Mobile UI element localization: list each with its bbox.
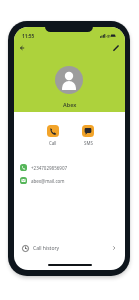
staticText: Call <box>49 140 57 146</box>
staticText: Abex <box>63 101 77 108</box>
staticText: Call history <box>33 245 60 252</box>
staticText: 11:55 <box>22 33 35 40</box>
button[interactable]: Call history <box>14 241 125 255</box>
staticText: abex@mail.com <box>31 178 65 184</box>
staticText: SMS <box>84 140 93 146</box>
button[interactable]: +2347029856907 <box>20 164 118 171</box>
staticText: +2347029856907 <box>31 165 68 171</box>
button[interactable]: Call <box>47 125 59 146</box>
button[interactable]: Back <box>16 42 27 53</box>
button[interactable]: Edit contact <box>110 42 121 53</box>
button[interactable]: abex@mail.com <box>20 177 118 184</box>
button[interactable]: SMS <box>82 125 94 146</box>
